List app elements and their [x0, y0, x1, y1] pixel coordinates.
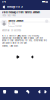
button[interactable]: Next message — [42, 89, 48, 95]
staticText: Voice message from Tammy Johnson — [2, 11, 40, 14]
button[interactable]: Play voice message — [16, 55, 19, 59]
staticText: Message 9 of 21 — [7, 6, 23, 8]
staticText: 9:41 — [2, 1, 6, 3]
button[interactable]: Back to Inbox — [1, 4, 6, 10]
staticText: Today at 10:24 AM — [8, 25, 22, 27]
button[interactable]: Delete — [2, 89, 8, 95]
button[interactable]: More options — [45, 20, 48, 23]
button[interactable]: Move to folder — [13, 89, 19, 95]
staticText: 30 seconds — [11, 29, 21, 32]
staticText: Thanks, talk soon. — [2, 45, 19, 47]
staticText: Tammy Johnson — [8, 20, 23, 22]
staticText: Voicemail — [2, 29, 9, 32]
staticText: To: me — [8, 23, 15, 25]
staticText: Hi, it's Tammy calling about the meeting… — [2, 35, 47, 44]
staticText: (425) 562-1468 — [2, 14, 16, 17]
button[interactable]: Previous message — [36, 89, 42, 95]
staticText: ●●● — [42, 1, 45, 3]
button[interactable]: Audio output — [31, 55, 34, 58]
button[interactable]: Reply — [25, 89, 31, 95]
